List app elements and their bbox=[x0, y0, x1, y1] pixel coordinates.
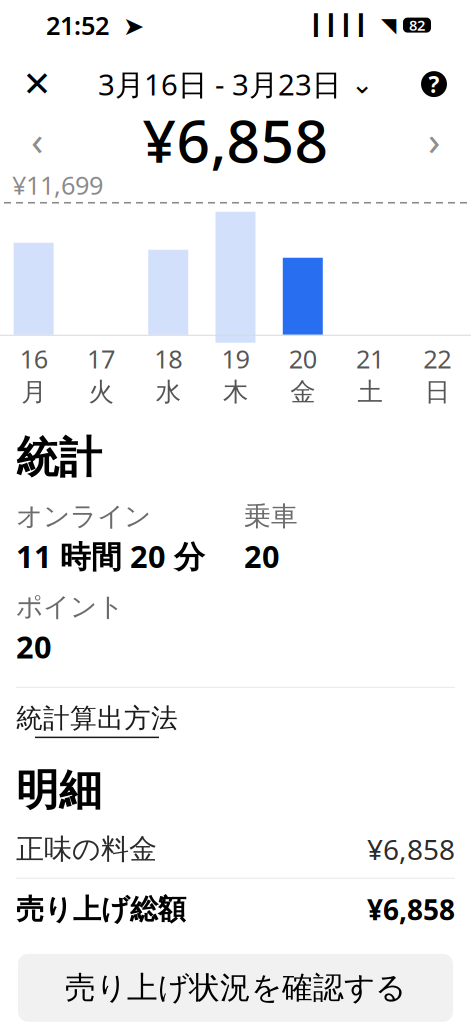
staticText: ✕ bbox=[22, 64, 51, 104]
staticText: 21 bbox=[356, 342, 384, 375]
staticText: 土 bbox=[358, 376, 383, 407]
staticText: 82 bbox=[409, 15, 425, 35]
button[interactable]: 前の週 bbox=[14, 117, 60, 163]
staticText: オンライン bbox=[16, 500, 151, 533]
staticText: 木 bbox=[223, 376, 248, 407]
button[interactable]: 閉じる bbox=[12, 59, 62, 109]
staticText: ? bbox=[428, 69, 439, 99]
staticText: ▎▎▎▎ bbox=[314, 14, 374, 36]
staticText: 19 bbox=[221, 342, 249, 375]
staticText: 正味の料金 bbox=[16, 832, 157, 866]
staticText: ポイント bbox=[16, 590, 124, 623]
staticText: ¥6,858 bbox=[367, 891, 455, 928]
staticText: 売り上げ状況を確認する bbox=[65, 969, 406, 1007]
button[interactable]: 3月16日 - 3月23日 bbox=[88, 62, 383, 106]
staticText: 日 bbox=[425, 376, 450, 407]
staticText: › bbox=[428, 113, 440, 167]
staticText: 乗車 bbox=[244, 500, 298, 533]
button[interactable]: 売り上げ状況を確認する bbox=[18, 954, 453, 1022]
staticText: 売り上げ総額 bbox=[16, 892, 186, 926]
staticText: 明細 bbox=[16, 764, 102, 816]
staticText: ¥11,699 bbox=[12, 168, 103, 202]
staticText: ◥ bbox=[381, 14, 396, 36]
staticText: 20 bbox=[244, 536, 280, 576]
staticText: ‹ bbox=[31, 113, 43, 167]
staticText: 17 bbox=[87, 342, 115, 375]
staticText: ¥6,858 bbox=[367, 830, 455, 868]
staticText: 火 bbox=[88, 376, 113, 407]
staticText: 20 bbox=[16, 626, 52, 667]
staticText: 統計 bbox=[16, 431, 102, 484]
button[interactable]: 次の週 bbox=[411, 117, 457, 163]
button[interactable]: ヘルプ bbox=[409, 59, 459, 109]
staticText: 16 bbox=[20, 342, 48, 375]
staticText: 3月16日 - 3月23日 bbox=[98, 65, 341, 104]
button[interactable]: 統計算出方法 bbox=[16, 688, 178, 740]
staticText: ⌄ bbox=[351, 69, 373, 99]
staticText: 水 bbox=[156, 376, 181, 407]
staticText: 11 時間 20 分 bbox=[16, 536, 205, 576]
staticText: 18 bbox=[154, 342, 182, 375]
staticText: 金 bbox=[290, 376, 315, 407]
staticText: 月 bbox=[21, 376, 46, 407]
staticText: 20 bbox=[289, 342, 317, 375]
staticText: 21:52 ➤ bbox=[46, 8, 144, 42]
staticText: 22 bbox=[423, 342, 451, 375]
staticText: 統計算出方法 bbox=[16, 702, 178, 735]
staticText: ¥6,858 bbox=[142, 101, 328, 179]
